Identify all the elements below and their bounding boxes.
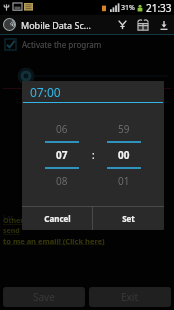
staticText: 01	[118, 174, 130, 188]
staticText: Activate the program	[22, 39, 102, 50]
button[interactable]: 07	[38, 143, 86, 167]
button[interactable]: 01	[100, 169, 148, 193]
staticText: :	[92, 148, 95, 162]
button[interactable]: Share	[112, 15, 132, 34]
staticText: Mobile Data Sc...	[21, 19, 91, 31]
staticText: 07	[56, 148, 68, 162]
button[interactable]: Cancel	[22, 207, 92, 230]
button[interactable]: 00	[100, 143, 148, 167]
button[interactable]	[0, 68, 174, 84]
staticText: Cancel	[44, 213, 71, 224]
button[interactable]: Save	[3, 287, 85, 307]
staticText: 06	[56, 122, 68, 136]
button[interactable]: Exit	[89, 287, 171, 307]
staticText: 07:00	[30, 84, 61, 100]
staticText: 59	[118, 122, 130, 136]
staticText: Other languages? If you are interested, …	[3, 216, 171, 236]
button[interactable]: 59	[100, 117, 148, 141]
staticText: 21:33	[146, 1, 172, 15]
button[interactable]: Gift	[132, 15, 154, 34]
staticText: Lar	[3, 213, 14, 223]
button[interactable]: Download	[154, 15, 174, 34]
button[interactable]: Set	[93, 207, 164, 230]
button[interactable]: 06	[38, 117, 86, 141]
staticText: 31%	[121, 3, 135, 13]
staticText: 08	[56, 174, 68, 188]
button[interactable]: Activate the program	[0, 36, 174, 53]
staticText: Exit	[121, 290, 139, 304]
staticText: Save	[33, 290, 55, 304]
button[interactable]: to me an email! (Click here)	[3, 236, 105, 246]
staticText: Set	[122, 213, 135, 224]
staticText: 00	[118, 148, 130, 162]
button[interactable]: 08	[38, 169, 86, 193]
